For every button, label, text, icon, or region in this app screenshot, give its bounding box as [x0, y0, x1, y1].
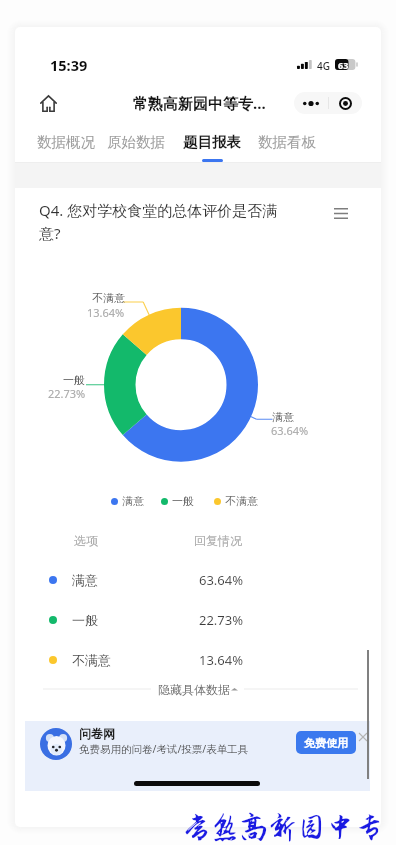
staticText: 数据看板	[258, 133, 316, 151]
staticText: 不满意	[92, 291, 125, 305]
staticText: 22.73%	[48, 386, 86, 401]
button[interactable]: 满意	[111, 493, 144, 509]
button[interactable]: 题目报表	[183, 133, 241, 162]
staticText: 原始数据	[107, 133, 165, 151]
staticText: 15:39	[50, 55, 88, 75]
button[interactable]: 隐藏具体数据	[158, 682, 238, 697]
button[interactable]: 不满意	[15, 640, 381, 680]
staticText: 常熟高新园中等专...	[133, 93, 266, 113]
button[interactable]: 数据概况	[37, 133, 95, 162]
staticText: 63.64%	[271, 423, 309, 438]
staticText: Q4. 您对学校食堂的总体评价是否满意?	[39, 200, 289, 244]
button[interactable]: More options	[294, 92, 328, 114]
button[interactable]: 不满意	[214, 493, 258, 509]
staticText: 满意	[72, 572, 98, 588]
staticText: 选项	[74, 533, 98, 548]
button[interactable]: 满意	[15, 560, 381, 600]
staticText: 常熟高新园中专	[182, 812, 384, 844]
staticText: 满意	[122, 494, 144, 508]
staticText: 免费易用的问卷/考试/投票/表单工具	[79, 742, 249, 756]
button[interactable]: 原始数据	[107, 133, 165, 162]
button[interactable]: 数据看板	[258, 133, 316, 162]
button[interactable]: Close ad	[357, 731, 369, 743]
staticText: 免费使用	[304, 736, 348, 750]
button[interactable]: 问卷网	[25, 721, 370, 767]
staticText: 不满意	[225, 494, 258, 508]
staticText: 问卷网	[79, 726, 115, 741]
button[interactable]: Home	[33, 88, 63, 118]
staticText: 13.64%	[87, 305, 125, 320]
staticText: 一般	[63, 373, 85, 387]
staticText: 回复情况	[194, 533, 242, 548]
button[interactable]: Close mini program	[329, 92, 362, 114]
staticText: 满意	[272, 410, 294, 424]
staticText: 13.64%	[199, 651, 381, 669]
staticText: 4G	[317, 59, 330, 73]
staticText: 隐藏具体数据	[158, 682, 230, 697]
staticText: 22.73%	[199, 611, 381, 629]
button[interactable]: 免费使用	[296, 731, 356, 754]
staticText: 数据概况	[37, 133, 95, 151]
staticText: 题目报表	[183, 133, 241, 151]
button[interactable]: 一般	[161, 493, 194, 509]
staticText: 一般	[172, 494, 194, 508]
button[interactable]: Switch chart type	[328, 200, 354, 226]
staticText: 63.64%	[199, 571, 381, 589]
button[interactable]: 一般	[15, 600, 381, 640]
staticText: 不满意	[72, 652, 111, 668]
staticText: 一般	[72, 612, 98, 628]
staticText: 63	[338, 59, 349, 70]
